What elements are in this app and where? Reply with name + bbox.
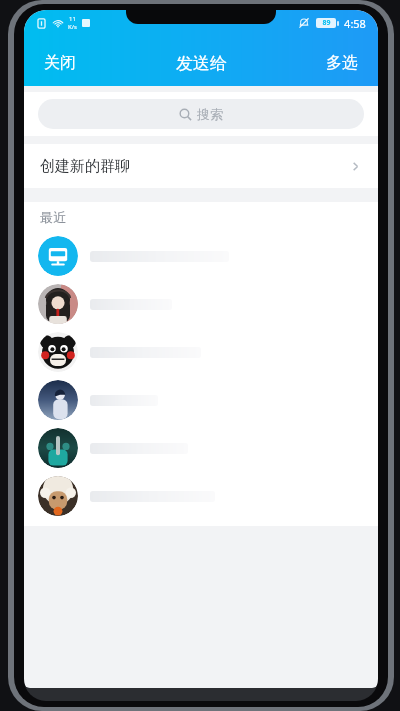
staticText: K/s [68, 23, 77, 31]
staticText: 多选 [326, 53, 358, 73]
button[interactable]: 多选 [316, 47, 368, 79]
button[interactable] [24, 424, 378, 472]
button[interactable]: 搜索 [38, 99, 364, 129]
button[interactable]: 关闭 [34, 47, 86, 79]
staticText: 创建新的群聊 [40, 157, 130, 176]
staticText: 最近 [40, 209, 66, 225]
button[interactable] [24, 328, 378, 376]
staticText: 关闭 [44, 53, 76, 73]
staticText: 发送给 [176, 53, 227, 74]
button[interactable] [24, 280, 378, 328]
button[interactable] [24, 232, 378, 280]
button[interactable] [24, 376, 378, 424]
staticText: 4:58 [344, 16, 366, 31]
staticText: 89 [322, 18, 331, 28]
button[interactable] [24, 472, 378, 520]
button[interactable]: 创建新的群聊 [24, 144, 378, 188]
staticText: 11 [69, 15, 76, 23]
staticText: 搜索 [197, 106, 223, 122]
